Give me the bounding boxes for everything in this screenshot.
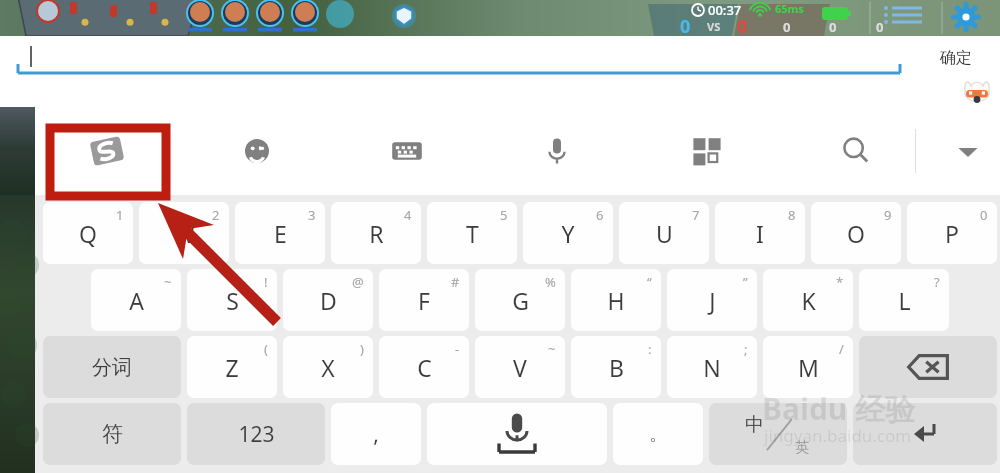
button[interactable]: G	[475, 269, 565, 331]
staticText: 确定	[940, 48, 972, 68]
staticText: Baidu 经验	[762, 388, 916, 429]
button[interactable]: Space	[427, 403, 607, 465]
staticText: H	[607, 285, 625, 316]
staticText: 0	[980, 206, 988, 224]
staticText: L	[898, 285, 911, 316]
staticText: J	[709, 285, 716, 316]
button[interactable]: B	[571, 336, 661, 398]
staticText: 8	[788, 206, 796, 224]
button[interactable]: Enter	[853, 403, 997, 465]
staticText: Y	[561, 218, 575, 249]
staticText: Z	[225, 352, 239, 383]
button[interactable]: J	[667, 269, 757, 331]
staticText: G	[512, 285, 529, 316]
button[interactable]: More tools	[645, 107, 769, 195]
button[interactable]: 123	[187, 403, 325, 465]
staticText: N	[703, 352, 721, 383]
staticText: 0	[737, 14, 748, 39]
staticText: “	[647, 273, 652, 291]
staticText: ?	[934, 273, 940, 291]
staticText: P	[945, 218, 959, 249]
staticText: 5	[500, 206, 508, 224]
staticText: 00:37	[708, 1, 742, 19]
button[interactable]: Emoji	[195, 107, 319, 195]
staticText: :	[648, 340, 652, 358]
staticText: 4	[404, 206, 412, 224]
button[interactable]: A	[91, 269, 181, 331]
staticText: #	[451, 273, 460, 291]
button[interactable]: I	[715, 202, 805, 264]
button[interactable]: O	[811, 202, 901, 264]
button[interactable]: ,	[331, 403, 421, 465]
button[interactable]: P	[907, 202, 997, 264]
button[interactable]: Q	[43, 202, 133, 264]
staticText: 7	[692, 206, 700, 224]
button[interactable]: Hide keyboard	[936, 107, 1000, 195]
staticText: 0	[876, 18, 884, 36]
staticText: )	[360, 340, 364, 358]
staticText: 0	[783, 18, 791, 36]
button[interactable]: D	[283, 269, 373, 331]
staticText: ~	[548, 340, 556, 358]
button[interactable]: 符	[43, 403, 181, 465]
staticText: 。	[649, 423, 667, 446]
button[interactable]: F	[379, 269, 469, 331]
button[interactable]: X	[283, 336, 373, 398]
staticText: I	[756, 218, 764, 249]
button[interactable]: 。	[613, 403, 703, 465]
staticText: 9	[884, 206, 892, 224]
staticText: 0	[680, 14, 691, 39]
staticText: -	[455, 340, 460, 358]
button[interactable]: Search	[794, 107, 918, 195]
button[interactable]: W	[139, 202, 229, 264]
staticText: 3	[308, 206, 316, 224]
staticText: /	[839, 340, 844, 358]
button[interactable]: N	[667, 336, 757, 398]
button[interactable]: T	[427, 202, 517, 264]
staticText: A	[129, 285, 144, 316]
button[interactable]: K	[763, 269, 853, 331]
staticText: VS	[707, 19, 721, 34]
button[interactable]: Z	[187, 336, 277, 398]
button[interactable]: Sogou keyboard menu	[45, 107, 169, 195]
staticText: F	[418, 285, 430, 316]
button[interactable]: S	[187, 269, 277, 331]
button[interactable]: C	[379, 336, 469, 398]
button[interactable]: 确定	[932, 44, 980, 72]
staticText: @	[352, 273, 364, 291]
button[interactable]: Y	[523, 202, 613, 264]
staticText: T	[466, 218, 479, 249]
staticText: C	[417, 352, 432, 383]
button[interactable]: Voice input	[495, 107, 619, 195]
staticText: 6	[596, 206, 604, 224]
button[interactable]: M	[763, 336, 853, 398]
staticText: S	[226, 285, 239, 316]
staticText: D	[320, 285, 337, 316]
button[interactable]: Backspace	[859, 336, 997, 398]
staticText: E	[274, 218, 287, 249]
staticText: !	[264, 273, 268, 291]
staticText: B	[609, 352, 624, 383]
staticText: 65ms	[775, 1, 804, 16]
button[interactable]: H	[571, 269, 661, 331]
staticText: V	[513, 352, 527, 383]
staticText: O	[847, 218, 865, 249]
staticText: R	[369, 218, 384, 249]
button[interactable]: V	[475, 336, 565, 398]
staticText: ;	[744, 340, 748, 358]
button[interactable]: R	[331, 202, 421, 264]
staticText: (	[264, 340, 268, 358]
staticText: 1	[116, 206, 124, 224]
button[interactable]: Assistant mascot	[960, 78, 994, 112]
button[interactable]: Keyboard layout	[345, 107, 469, 195]
staticText: ~	[164, 273, 172, 291]
button[interactable]: Chinese English toggle	[709, 403, 847, 465]
staticText: 符	[102, 421, 123, 447]
staticText: X	[321, 352, 335, 383]
staticText: W	[173, 218, 195, 249]
button[interactable]: L	[859, 269, 949, 331]
button[interactable]: E	[235, 202, 325, 264]
staticText: 中	[745, 413, 764, 437]
button[interactable]: 分词	[43, 336, 181, 398]
button[interactable]: U	[619, 202, 709, 264]
